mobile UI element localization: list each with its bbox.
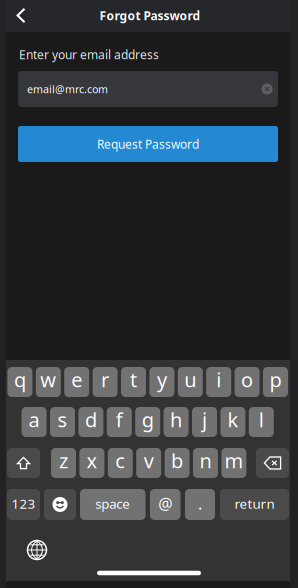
button[interactable]: o	[235, 367, 260, 397]
staticText: v	[144, 447, 154, 474]
staticText: u	[184, 366, 196, 393]
button[interactable]: d	[78, 407, 103, 437]
staticText: x	[86, 447, 97, 474]
staticText: s	[57, 406, 67, 433]
button[interactable]: j	[192, 407, 217, 437]
button[interactable]: a	[22, 407, 47, 437]
button[interactable]: b	[165, 448, 190, 478]
button[interactable]: r	[93, 367, 118, 397]
button[interactable]: return	[220, 489, 289, 520]
button[interactable]: m	[221, 448, 246, 478]
staticText: y	[157, 366, 167, 393]
button[interactable]: v	[136, 448, 161, 478]
staticText: 123	[11, 495, 35, 512]
staticText: c	[115, 447, 125, 474]
button[interactable]: k	[220, 407, 245, 437]
staticText: Forgot Password	[99, 7, 200, 23]
staticText: r	[101, 366, 109, 393]
button[interactable]: space	[80, 489, 145, 520]
staticText: f	[116, 406, 123, 433]
button[interactable]: q	[7, 367, 32, 397]
button[interactable]: w	[36, 367, 61, 397]
button[interactable]: Clear text	[256, 78, 278, 100]
button[interactable]: f	[107, 407, 132, 437]
button[interactable]: n	[193, 448, 218, 478]
staticText: Enter your email address	[19, 46, 159, 62]
button[interactable]: x	[79, 448, 104, 478]
staticText: q	[14, 366, 26, 393]
button[interactable]: Emoji	[44, 489, 76, 520]
staticText: l	[259, 406, 264, 433]
button[interactable]: y	[149, 367, 174, 397]
staticText: z	[59, 447, 68, 474]
button[interactable]: .	[185, 489, 215, 520]
staticText: return	[234, 495, 274, 512]
button[interactable]: @	[150, 489, 180, 520]
button[interactable]: u	[178, 367, 203, 397]
button[interactable]: c	[108, 448, 133, 478]
button[interactable]: 123	[7, 489, 40, 520]
button[interactable]: Back	[4, 0, 38, 31]
staticText: @	[158, 493, 172, 514]
staticText: k	[227, 406, 238, 433]
staticText: m	[224, 447, 243, 474]
button[interactable]: Delete	[256, 448, 289, 478]
staticText: o	[241, 366, 253, 393]
staticText: email@mrc.com	[27, 82, 108, 96]
staticText: h	[170, 406, 182, 433]
button[interactable]: g	[135, 407, 160, 437]
button[interactable]: s	[50, 407, 75, 437]
staticText: w	[40, 366, 56, 393]
button[interactable]: z	[51, 448, 76, 478]
button[interactable]: Shift	[7, 448, 40, 478]
staticText: b	[171, 447, 183, 474]
button[interactable]: i	[206, 367, 231, 397]
staticText: i	[216, 366, 221, 393]
button[interactable]: p	[263, 367, 288, 397]
staticText: .	[198, 493, 202, 514]
button[interactable]: Request Password	[18, 126, 278, 162]
staticText: a	[29, 406, 40, 433]
button[interactable]: l	[249, 407, 274, 437]
staticText: j	[202, 406, 207, 433]
staticText: g	[142, 406, 154, 433]
staticText: e	[71, 366, 82, 393]
button[interactable]: e	[64, 367, 89, 397]
staticText: n	[199, 447, 211, 474]
staticText: Request Password	[97, 136, 199, 152]
staticText: t	[130, 366, 137, 393]
staticText: d	[85, 406, 97, 433]
button[interactable]: t	[121, 367, 146, 397]
staticText: p	[269, 366, 281, 393]
button[interactable]: Switch keyboard	[22, 535, 52, 565]
staticText: space	[95, 495, 130, 512]
button[interactable]: h	[164, 407, 189, 437]
